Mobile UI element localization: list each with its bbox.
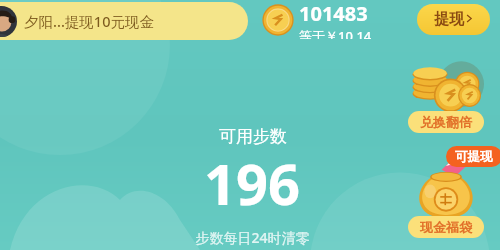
staticText: 兑换翻倍 [420, 114, 472, 130]
button[interactable]: 提现 [417, 4, 490, 35]
button[interactable]: 兑换翻倍 [398, 55, 494, 133]
button[interactable]: 现金福袋 [398, 152, 498, 244]
staticText: 等于￥10.14 [299, 27, 372, 39]
staticText: 提现 [434, 10, 464, 29]
staticText: 101483 [299, 0, 368, 27]
button[interactable]: 夕阳...提现10元现金 [0, 2, 248, 40]
button[interactable]: 101483 [261, 0, 372, 40]
staticText: 步数每日24时清零 [195, 228, 310, 247]
staticText: 夕阳...提现10元现金 [24, 11, 154, 31]
staticText: 现金福袋 [420, 219, 472, 235]
staticText: 196 [204, 145, 301, 221]
staticText: 可用步数 [219, 126, 287, 147]
staticText: 可提现 [455, 149, 493, 165]
